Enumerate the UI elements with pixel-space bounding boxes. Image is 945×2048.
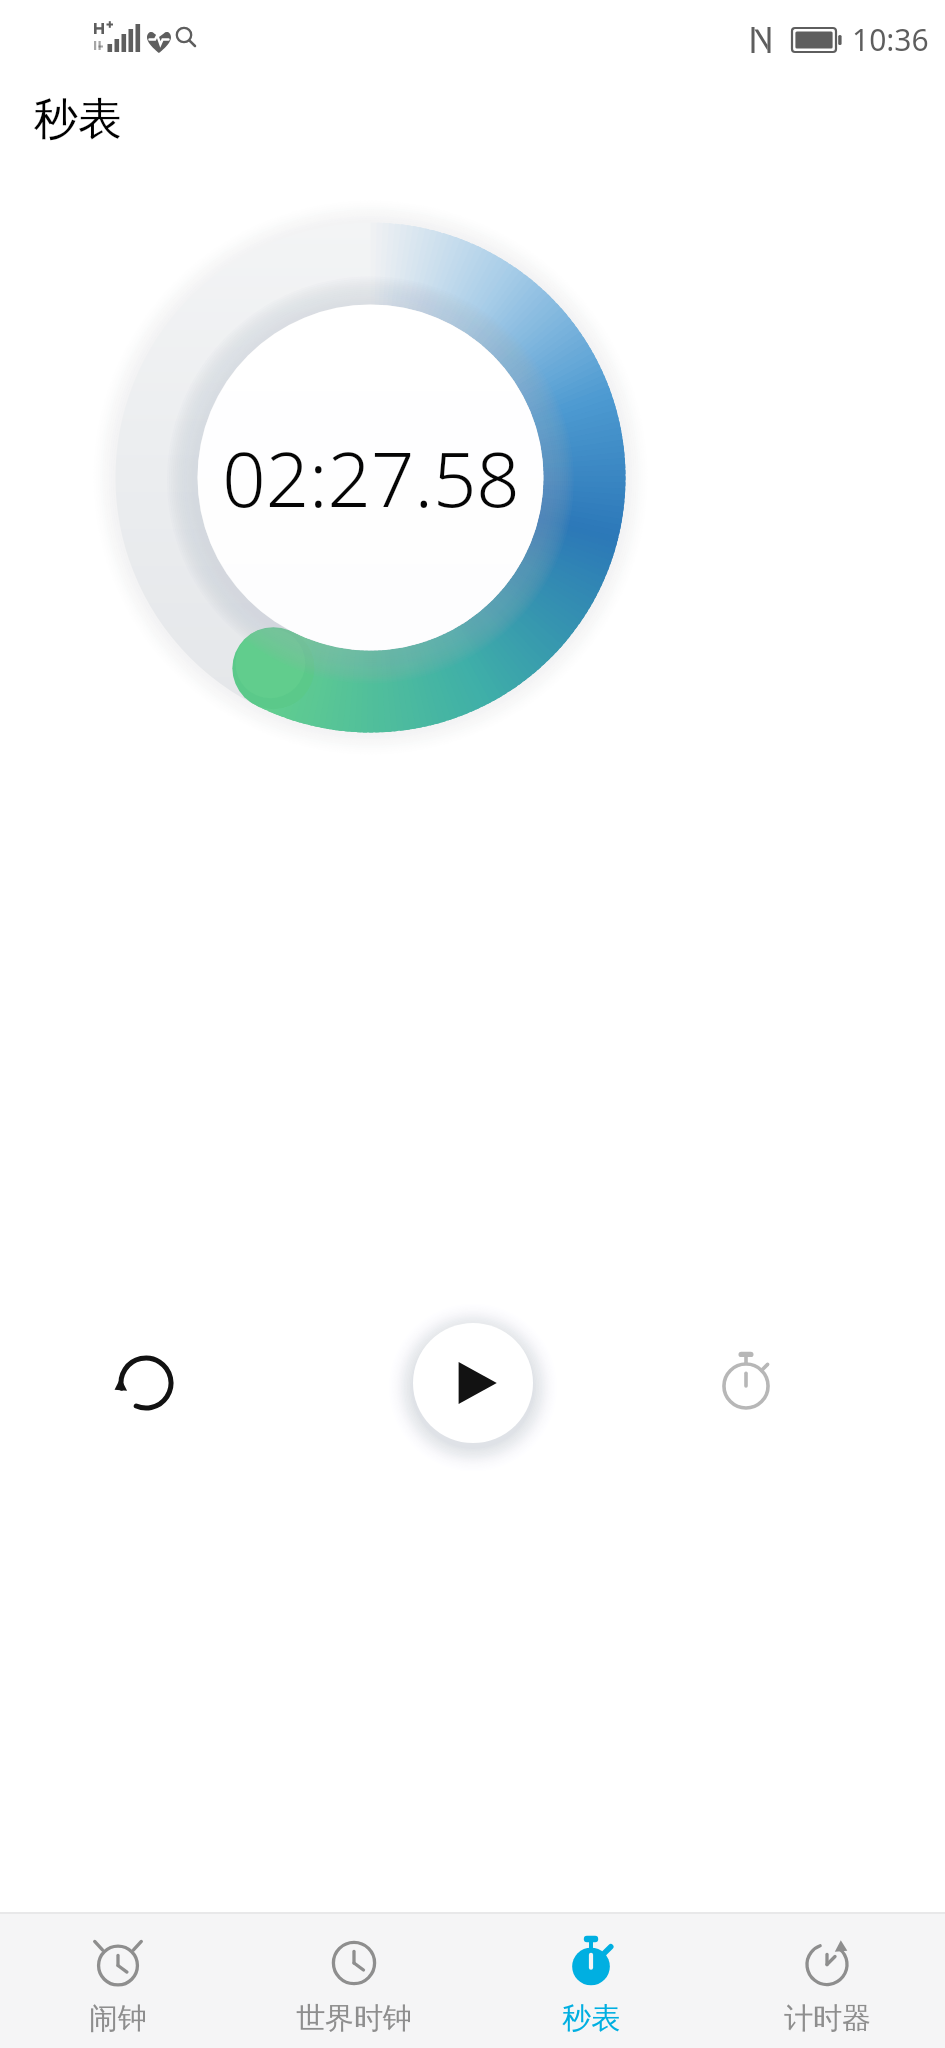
button[interactable]: 计时器 [709,1926,945,2037]
button[interactable]: Lap [690,1326,802,1438]
button[interactable]: Reset [90,1326,202,1438]
staticText: 计时器 [784,2000,871,2037]
staticText: 02:27.58 [222,426,520,530]
button[interactable]: 秒表 [473,1926,709,2037]
staticText: 世界时钟 [296,2000,412,2037]
button[interactable]: Start [390,1300,556,1466]
button[interactable]: 闹钟 [0,1926,236,2037]
staticText: 10:36 [852,19,929,60]
staticText: 秒表 [34,92,122,147]
button[interactable]: 世界时钟 [236,1926,472,2037]
staticText: 秒表 [562,2000,620,2037]
staticText: 闹钟 [89,2000,147,2037]
